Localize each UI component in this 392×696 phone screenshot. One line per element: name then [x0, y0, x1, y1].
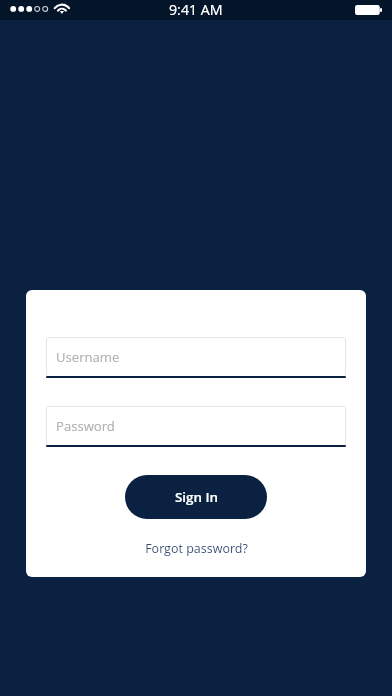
button[interactable]: Username — [46, 337, 346, 377]
staticText: Username — [56, 348, 120, 366]
other: Signal strength and Wi-Fi — [10, 3, 70, 15]
staticText: Forgot password? — [145, 540, 248, 557]
staticText: Sign In — [175, 488, 219, 506]
staticText: Password — [56, 417, 115, 435]
button[interactable]: Password — [46, 406, 346, 446]
button[interactable]: Sign In — [125, 475, 267, 519]
other: Battery full — [355, 5, 382, 15]
staticText: 9:41 AM — [169, 0, 223, 19]
button[interactable]: Forgot password? — [139, 537, 254, 560]
